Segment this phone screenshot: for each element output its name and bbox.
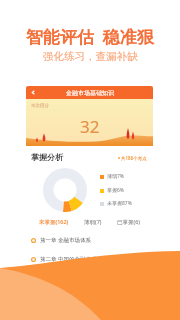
staticText: 本次得分 — [31, 103, 49, 109]
staticText: 掌握6% — [107, 187, 125, 194]
staticText: 掌握分析 — [31, 152, 63, 162]
staticText: 已掌握(6) — [117, 218, 140, 226]
button[interactable]: 薄弱(7) — [82, 217, 104, 227]
staticText: 智能评估 稳准狠 — [26, 25, 154, 48]
button[interactable]: 已掌握(6) — [115, 217, 142, 227]
staticText: 金融市场基础知识 — [66, 89, 114, 97]
staticText: 强化练习，查漏补缺 — [43, 50, 138, 63]
button[interactable]: 第二章 中国的金融体系与金融市场的发展 — [26, 255, 153, 263]
button[interactable]: Back — [30, 89, 37, 96]
staticText: 未掌握87% — [107, 200, 132, 207]
staticText: 第二章 中国的金融体系与金融市场的发展 — [40, 255, 141, 263]
staticText: 未掌握(162) — [39, 218, 69, 226]
staticText: 第一章 金融市场体系 — [40, 236, 91, 244]
staticText: 32 — [80, 115, 100, 138]
staticText: 薄弱7% — [107, 173, 125, 180]
staticText: 共186个考点 — [121, 155, 147, 161]
button[interactable]: 未掌握(162) — [37, 217, 71, 227]
button[interactable]: 第一章 金融市场体系 — [26, 236, 153, 244]
staticText: 薄弱(7) — [84, 218, 102, 226]
